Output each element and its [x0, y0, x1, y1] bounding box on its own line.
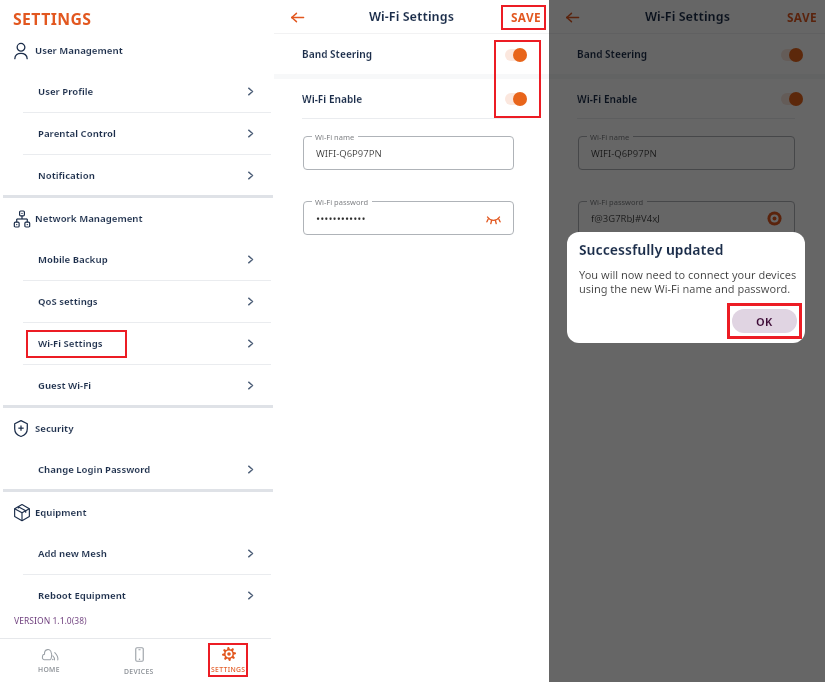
staticText: Equipment [35, 506, 87, 519]
button[interactable]: Reboot Equipment [0, 575, 274, 616]
staticText: SETTINGS [211, 665, 246, 674]
staticText: Add new Mesh [38, 547, 107, 560]
button[interactable] [781, 47, 809, 62]
staticText: Parental Control [38, 127, 116, 140]
button[interactable]: Change Login Password [0, 449, 274, 490]
button[interactable]: User Profile [0, 71, 274, 112]
button[interactable] [781, 91, 809, 106]
staticText: SETTINGS [13, 8, 92, 30]
staticText: You will now need to connect your device… [579, 267, 797, 296]
staticText: Wi-Fi Enable [577, 92, 638, 106]
staticText: Security [35, 422, 74, 435]
staticText: Network Management [35, 212, 143, 225]
staticText: Band Steering [577, 47, 648, 61]
staticText: •••••••••••• [316, 211, 366, 226]
button[interactable]: Add new Mesh [0, 533, 274, 574]
staticText: WIFI-Q6P97PN [316, 147, 382, 160]
staticText: User Management [35, 44, 123, 57]
staticText: OK [756, 314, 773, 329]
button[interactable] [505, 91, 533, 106]
staticText: Notification [38, 169, 95, 182]
staticText: f@3G7RbJ#V4xJ [591, 212, 660, 225]
staticText: Wi-Fi password [315, 197, 369, 207]
button[interactable]: Show password [765, 209, 784, 228]
staticText: SAVE [511, 9, 541, 25]
button[interactable]: Guest Wi-Fi [0, 365, 274, 406]
button[interactable]: Mobile Backup [0, 239, 274, 280]
button[interactable]: Back [560, 5, 584, 29]
staticText: Mobile Backup [38, 253, 108, 266]
button[interactable]: Notification [0, 155, 274, 196]
staticText: HOME [38, 665, 60, 674]
button[interactable]: Wi-Fi Settings [0, 323, 274, 364]
staticText: Guest Wi-Fi [38, 379, 92, 392]
staticText: Change Login Password [38, 463, 151, 476]
staticText: Band Steering [302, 47, 373, 61]
staticText: Wi-Fi Enable [302, 92, 363, 106]
staticText: Wi-Fi name [590, 132, 630, 142]
staticText: DEVICES [124, 667, 154, 676]
button[interactable]: SETTINGS [186, 639, 270, 682]
staticText: Successfully updated [579, 240, 724, 259]
staticText: Reboot Equipment [38, 589, 126, 602]
staticText: WIFI-Q6P97PN [591, 147, 657, 160]
staticText: SAVE [787, 9, 817, 25]
button[interactable]: SAVE [508, 5, 544, 29]
button[interactable]: Parental Control [0, 113, 274, 154]
staticText: User Profile [38, 85, 94, 98]
staticText: QoS settings [38, 295, 98, 308]
button[interactable]: QoS settings [0, 281, 274, 322]
staticText: Wi-Fi name [315, 132, 355, 142]
staticText: Wi-Fi password [590, 197, 644, 207]
button[interactable]: DEVICES [97, 639, 181, 682]
staticText: Wi-Fi Settings [645, 8, 730, 25]
button[interactable] [505, 47, 533, 62]
button[interactable]: OK [732, 309, 797, 333]
button[interactable]: Back [285, 5, 309, 29]
button[interactable]: SAVE [784, 5, 820, 29]
button[interactable]: Show password [484, 209, 503, 228]
button[interactable]: HOME [7, 639, 91, 682]
staticText: Wi-Fi Settings [38, 337, 103, 350]
staticText: Wi-Fi Settings [369, 8, 454, 25]
staticText: VERSION 1.1.0(38) [14, 615, 87, 627]
